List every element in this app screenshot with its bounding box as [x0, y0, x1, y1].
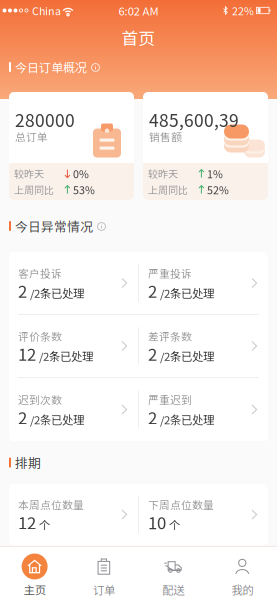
staticText: 280000 [15, 107, 75, 132]
button[interactable]: 本周点位数量 [9, 484, 138, 545]
staticText: 12 [18, 510, 36, 534]
button[interactable]: 配送 [138, 547, 208, 600]
staticText: 53% [71, 182, 95, 197]
staticText: 下周点位数量 [148, 497, 214, 512]
button[interactable]: 严重迟到 [139, 378, 268, 441]
staticText: /2条已处理 [157, 348, 214, 364]
staticText: 较昨天 [14, 166, 44, 181]
staticText: 差评条数 [148, 328, 192, 344]
staticText: 排期 [15, 453, 41, 472]
staticText: 销售额 [149, 129, 182, 144]
staticText: 严重迟到 [148, 392, 192, 407]
button[interactable]: 订单 [69, 547, 138, 600]
staticText: 首页 [121, 25, 155, 49]
staticText: 总订单 [15, 129, 48, 144]
staticText: 2 [18, 278, 27, 302]
staticText: 较昨天 [148, 166, 178, 181]
staticText: 12 [18, 341, 36, 365]
button[interactable]: 280000 [9, 92, 134, 200]
button[interactable]: 客户投诉 [9, 252, 138, 314]
staticText: 评价条数 [18, 328, 62, 344]
button[interactable]: 差评条数 [139, 315, 268, 377]
staticText: /2条已处理 [157, 285, 214, 301]
button[interactable]: 下周点位数量 [139, 484, 268, 545]
button[interactable]: 严重投诉 [139, 252, 268, 314]
staticText: /2条已处理 [27, 285, 84, 301]
staticText: 今日异常情况 [15, 217, 93, 235]
staticText: 个 [36, 516, 50, 532]
staticText: 2 [148, 278, 157, 302]
staticText: 2 [148, 341, 157, 365]
staticText: China [28, 3, 63, 18]
staticText: 485,600,39 [149, 107, 239, 132]
staticText: /2条已处理 [157, 411, 214, 427]
button[interactable]: 我的 [208, 547, 277, 600]
staticText: 52% [205, 182, 229, 197]
staticText: 本周点位数量 [18, 497, 84, 512]
staticText: 2 [18, 405, 27, 429]
staticText: 主页 [24, 581, 46, 598]
staticText: /2条已处理 [27, 411, 84, 427]
button[interactable]: 主页 [0, 547, 69, 600]
staticText: 严重投诉 [148, 265, 192, 281]
staticText: 0% [71, 166, 89, 181]
staticText: 2 [148, 405, 157, 429]
staticText: 个 [166, 516, 180, 532]
button[interactable]: 评价条数 [9, 315, 138, 377]
staticText: 迟到次数 [18, 392, 62, 407]
staticText: /2条已处理 [36, 348, 93, 364]
staticText: 6:02 AM [118, 2, 158, 19]
staticText: 上周同比 [148, 182, 188, 197]
staticText: 客户投诉 [18, 265, 62, 281]
staticText: 22% [228, 3, 256, 18]
staticText: 上周同比 [14, 182, 54, 197]
staticText: 我的 [231, 581, 253, 598]
button[interactable]: 迟到次数 [9, 378, 138, 441]
button[interactable]: 485,600,39 [143, 92, 268, 200]
staticText: 配送 [162, 581, 184, 598]
staticText: 订单 [93, 581, 115, 598]
staticText: 今日订单概况 [15, 58, 87, 76]
staticText: 1% [205, 166, 223, 181]
staticText: 10 [148, 510, 166, 534]
